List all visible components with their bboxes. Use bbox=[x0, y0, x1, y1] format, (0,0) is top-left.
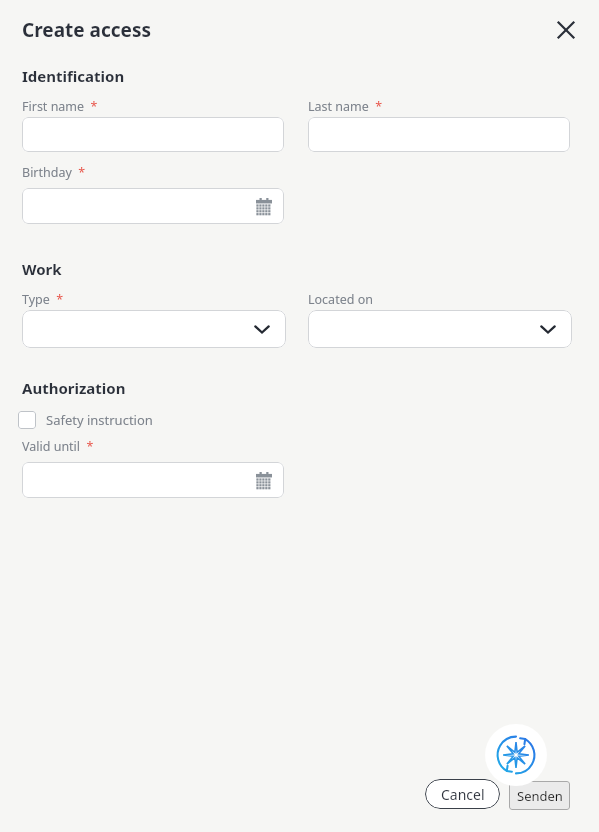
button[interactable] bbox=[22, 188, 284, 224]
button[interactable]: Close bbox=[546, 10, 586, 50]
button[interactable] bbox=[308, 117, 570, 152]
staticText: Valid until * bbox=[22, 438, 94, 455]
button[interactable] bbox=[22, 462, 284, 498]
staticText: Birthday * bbox=[22, 164, 86, 181]
staticText: Identification bbox=[22, 66, 125, 86]
button[interactable]: Open dropdown bbox=[308, 310, 572, 348]
staticText: Cancel bbox=[441, 785, 485, 804]
button[interactable]: Safety instruction bbox=[18, 407, 153, 433]
button[interactable]: Open dropdown bbox=[22, 310, 286, 348]
button[interactable] bbox=[22, 117, 284, 152]
staticText: First name * bbox=[22, 98, 98, 115]
staticText: Located on bbox=[308, 291, 373, 308]
button[interactable]: Cancel bbox=[425, 779, 500, 809]
staticText: Type * bbox=[22, 291, 64, 308]
staticText: Create access bbox=[22, 17, 151, 43]
button[interactable]: Senden bbox=[509, 781, 570, 810]
staticText: Last name * bbox=[308, 98, 383, 115]
staticText: Work bbox=[22, 259, 62, 279]
staticText: Authorization bbox=[22, 378, 126, 398]
staticText: Safety instruction bbox=[46, 411, 153, 429]
button[interactable]: Refresh bbox=[485, 724, 547, 786]
staticText: Senden bbox=[517, 787, 563, 805]
